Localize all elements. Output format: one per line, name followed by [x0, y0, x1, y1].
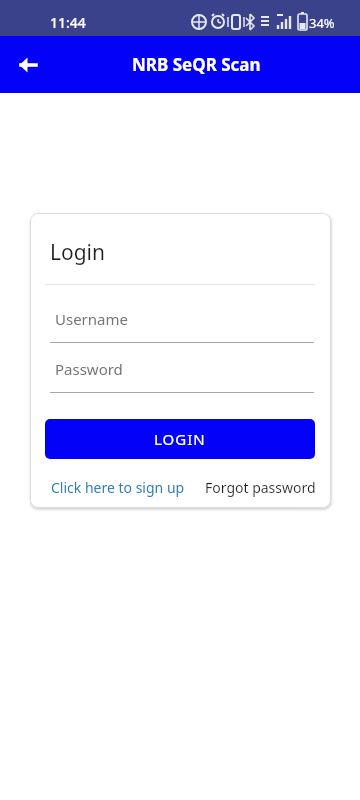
button[interactable]: Forgot password — [205, 478, 316, 497]
button[interactable] — [0, 37, 56, 93]
staticText: Username — [55, 309, 128, 329]
button[interactable]: Click here to sign up — [51, 478, 185, 497]
staticText: 11:44 — [50, 13, 86, 32]
staticText: NRB SeQR Scan — [132, 53, 261, 76]
button[interactable]: LOGIN — [45, 419, 315, 459]
staticText: Password — [55, 359, 123, 379]
staticText: 34% — [309, 14, 335, 32]
staticText: LOGIN — [154, 429, 206, 449]
staticText: Login — [50, 238, 106, 267]
